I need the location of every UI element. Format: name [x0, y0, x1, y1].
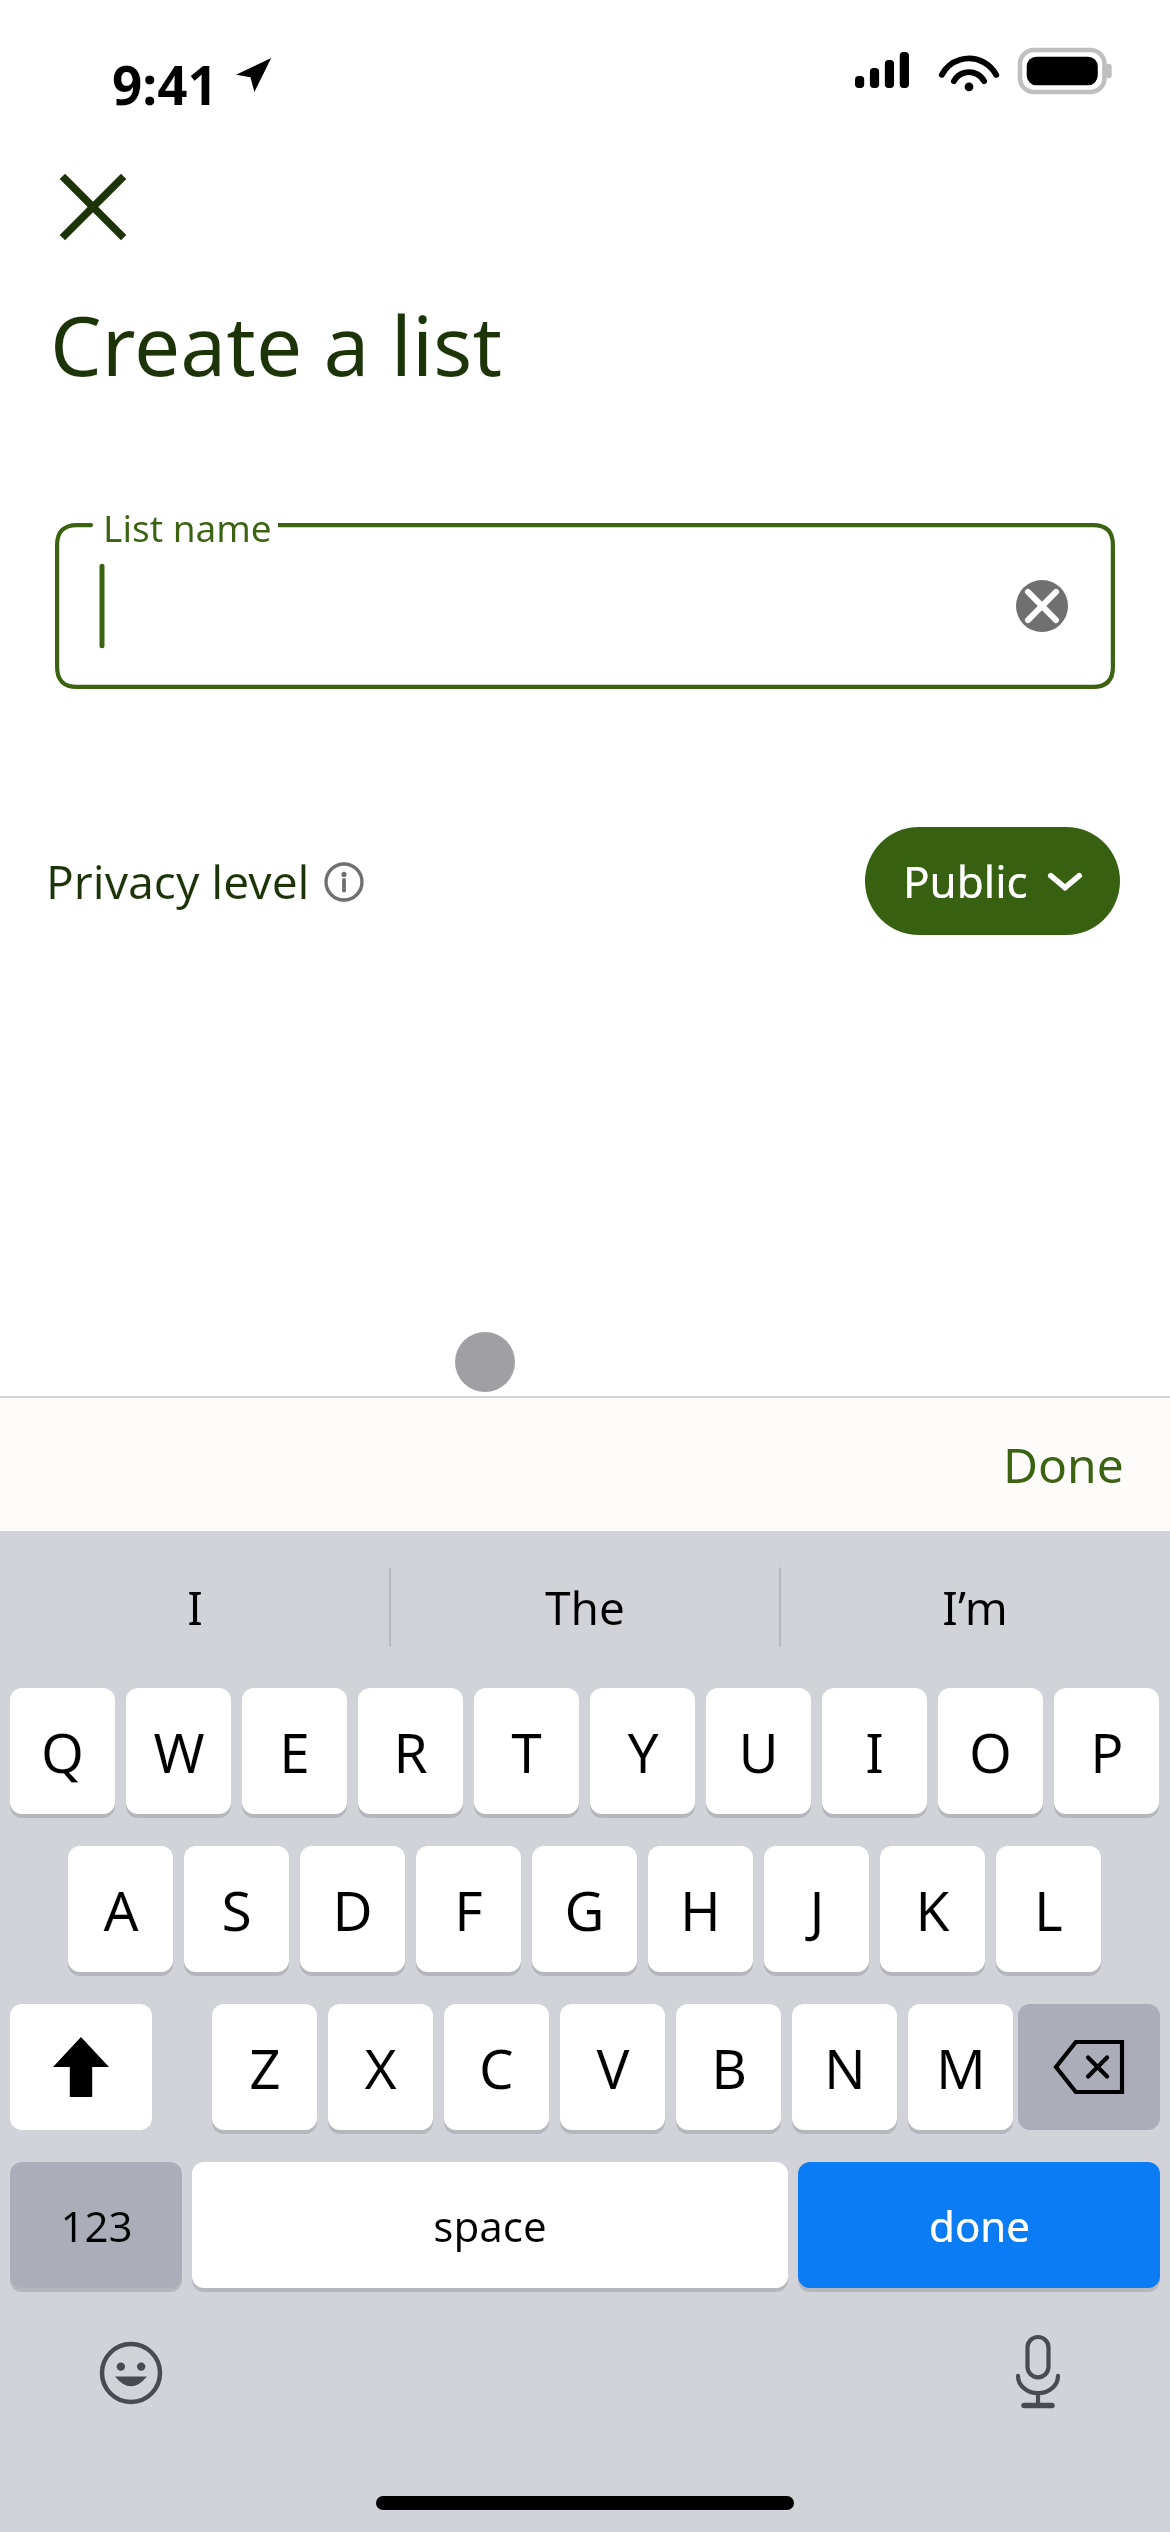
button[interactable]: I’m [780, 1531, 1170, 1683]
button[interactable]: B [676, 2004, 781, 2130]
button[interactable]: J [764, 1846, 869, 1972]
button[interactable]: N [792, 2004, 897, 2130]
staticText: Q [41, 1714, 84, 1789]
button[interactable]: L [996, 1846, 1101, 1972]
staticText: 9:41 [112, 48, 218, 120]
staticText: 123 [60, 2197, 133, 2254]
button[interactable]: The [390, 1531, 780, 1683]
staticText: T [511, 1714, 542, 1789]
staticText: Public [903, 851, 1028, 911]
staticText: V [596, 2030, 630, 2105]
button[interactable]: Q [10, 1688, 115, 1814]
staticText: C [479, 2030, 514, 2105]
staticText: I [865, 1714, 884, 1789]
button[interactable]: A [68, 1846, 173, 1972]
staticText: F [454, 1872, 483, 1947]
staticText: D [332, 1872, 373, 1947]
staticText: H [680, 1872, 721, 1947]
button[interactable]: X [328, 2004, 433, 2130]
staticText: done [929, 2197, 1030, 2254]
button[interactable]: I [822, 1688, 927, 1814]
staticText: I’m [942, 1576, 1008, 1639]
staticText: R [393, 1714, 428, 1789]
button[interactable]: O [938, 1688, 1043, 1814]
button[interactable]: Shift [10, 2004, 152, 2130]
staticText: W [153, 1714, 205, 1789]
staticText: N [824, 2030, 866, 2105]
button[interactable]: List name [55, 523, 1115, 689]
staticText: A [103, 1872, 139, 1947]
button[interactable]: C [444, 2004, 549, 2130]
button[interactable]: V [560, 2004, 665, 2130]
button[interactable]: H [648, 1846, 753, 1972]
button[interactable]: Y [590, 1688, 695, 1814]
button[interactable]: I [0, 1531, 390, 1683]
button[interactable]: E [242, 1688, 347, 1814]
button[interactable]: P [1054, 1688, 1159, 1814]
button[interactable]: R [358, 1688, 463, 1814]
button[interactable]: 123 [10, 2162, 182, 2288]
button[interactable]: Close [38, 152, 148, 262]
staticText: E [279, 1714, 310, 1789]
button[interactable]: space [192, 2162, 788, 2288]
button[interactable]: Dictate [985, 2320, 1091, 2426]
button[interactable]: K [880, 1846, 985, 1972]
button[interactable]: D [300, 1846, 405, 1972]
staticText: I [187, 1576, 203, 1639]
staticText: Privacy level [46, 850, 310, 913]
button[interactable]: M [908, 2004, 1013, 2130]
button[interactable]: Privacy level [46, 850, 364, 913]
staticText: The [545, 1576, 625, 1639]
staticText: P [1090, 1714, 1124, 1789]
staticText: List name [103, 502, 272, 552]
staticText: X [364, 2030, 397, 2105]
staticText: L [1034, 1872, 1063, 1947]
staticText: B [711, 2030, 747, 2105]
button[interactable]: Clear text [1005, 569, 1079, 643]
staticText: K [915, 1872, 950, 1947]
staticText: U [738, 1714, 779, 1789]
button[interactable]: T [474, 1688, 579, 1814]
staticText: J [809, 1872, 825, 1947]
button[interactable]: U [706, 1688, 811, 1814]
staticText: M [936, 2030, 986, 2105]
button[interactable]: W [126, 1688, 231, 1814]
button[interactable]: F [416, 1846, 521, 1972]
button[interactable]: G [532, 1846, 637, 1972]
button[interactable]: Done [957, 1404, 1170, 1525]
staticText: Y [627, 1714, 659, 1789]
staticText: S [221, 1872, 252, 1947]
staticText: space [433, 2197, 547, 2254]
button[interactable]: Emoji keyboard [78, 2320, 184, 2426]
staticText: Done [1003, 1432, 1124, 1497]
button[interactable]: Public [865, 827, 1120, 935]
staticText: G [564, 1872, 605, 1947]
button[interactable]: S [184, 1846, 289, 1972]
button[interactable]: Z [212, 2004, 317, 2130]
staticText: O [969, 1714, 1012, 1789]
button[interactable]: Backspace [1018, 2004, 1160, 2130]
staticText: Create a list [50, 288, 502, 400]
button[interactable]: done [798, 2162, 1160, 2288]
staticText: Z [249, 2030, 281, 2105]
